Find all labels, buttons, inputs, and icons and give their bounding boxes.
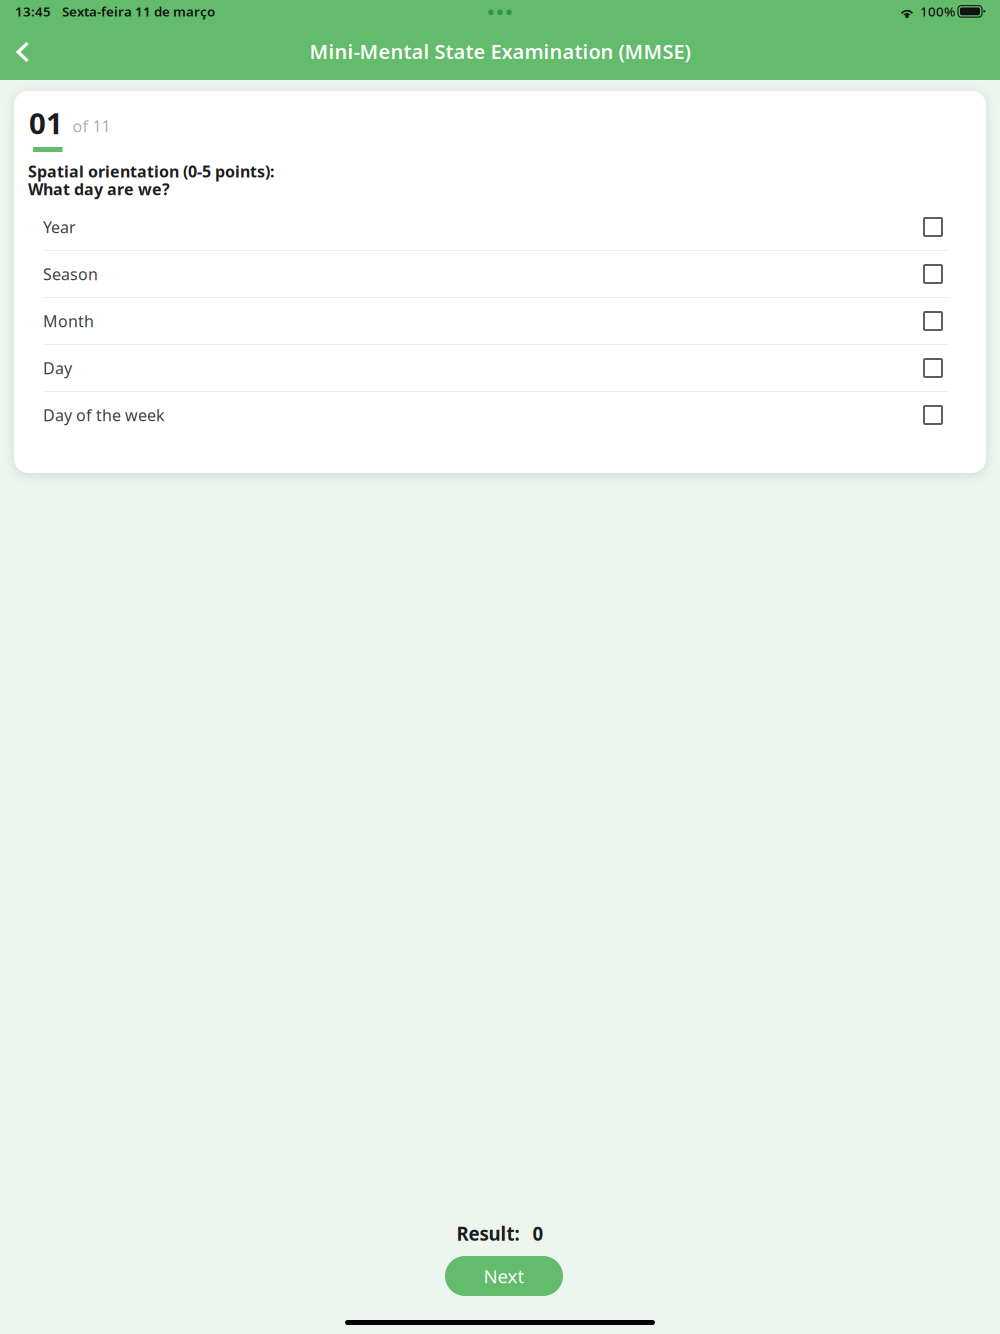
staticText: Result: <box>456 1221 519 1246</box>
button[interactable]: Back <box>1 30 45 74</box>
staticText: Year <box>43 216 76 238</box>
staticText: 100% <box>920 2 955 20</box>
staticText: Mini-Mental State Examination (MMSE) <box>309 38 690 65</box>
button[interactable]: Day of the week <box>43 392 948 439</box>
staticText: Next <box>483 1264 524 1288</box>
staticText: Spatial orientation (0-5 points): <box>28 161 274 182</box>
staticText: Season <box>43 263 98 285</box>
staticText: Day <box>43 357 72 379</box>
staticText: Month <box>43 310 94 332</box>
staticText: 13:45 <box>15 2 51 20</box>
staticText: Sexta-feira 11 de março <box>62 2 215 20</box>
button[interactable]: Month <box>43 298 948 345</box>
button[interactable]: Next <box>445 1256 563 1296</box>
button[interactable]: Season <box>43 251 948 298</box>
staticText: 01 <box>29 103 63 142</box>
staticText: 0 <box>532 1221 543 1246</box>
staticText: of 11 <box>72 115 110 136</box>
staticText: Day of the week <box>43 404 165 426</box>
staticText: What day are we? <box>28 178 170 200</box>
button[interactable]: Year <box>43 204 948 251</box>
button[interactable]: Day <box>43 345 948 392</box>
